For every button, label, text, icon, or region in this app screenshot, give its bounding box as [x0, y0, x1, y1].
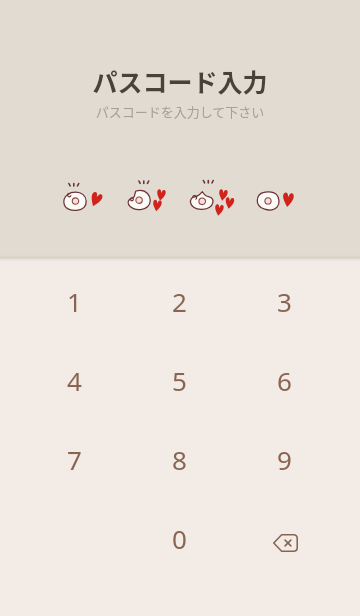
- staticText: 2: [172, 284, 187, 319]
- button[interactable]: 3: [232, 262, 337, 341]
- staticText: 0: [172, 521, 187, 556]
- button[interactable]: 1: [22, 262, 127, 341]
- button[interactable]: 2: [127, 262, 232, 341]
- staticText: パスコードを入力して下さい: [0, 102, 360, 121]
- staticText: パスコード入力: [0, 63, 360, 99]
- staticText: 4: [67, 363, 82, 398]
- staticText: 1: [67, 284, 82, 319]
- button[interactable]: 5: [127, 341, 232, 420]
- staticText: 3: [277, 284, 292, 319]
- button[interactable]: Backspace: [232, 499, 337, 578]
- staticText: 7: [67, 442, 82, 477]
- button[interactable]: 7: [22, 420, 127, 499]
- button[interactable]: 8: [127, 420, 232, 499]
- button[interactable]: 0: [127, 499, 232, 578]
- staticText: 8: [172, 442, 187, 477]
- staticText: 9: [277, 442, 292, 477]
- staticText: 6: [277, 363, 292, 398]
- staticText: 5: [172, 363, 187, 398]
- button[interactable]: 9: [232, 420, 337, 499]
- other: Backspace: [273, 534, 298, 552]
- button[interactable]: 4: [22, 341, 127, 420]
- button[interactable]: 6: [232, 341, 337, 420]
